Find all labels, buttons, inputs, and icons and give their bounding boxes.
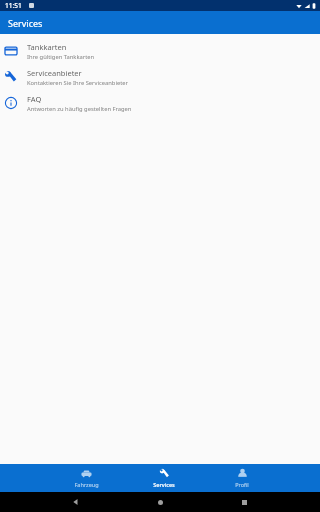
staticText: FAQ: [27, 94, 42, 104]
button[interactable]: Profil: [220, 464, 264, 492]
staticText: Services: [153, 481, 175, 488]
button[interactable]: FAQ: [0, 90, 320, 116]
staticText: Profil: [235, 481, 249, 488]
staticText: Kontaktieren Sie Ihre Serviceanbieter: [27, 79, 128, 87]
button[interactable]: Fahrzeug: [64, 464, 108, 492]
button[interactable]: Home: [152, 494, 168, 510]
staticText: Ihre gültigen Tankkarten: [27, 53, 95, 61]
staticText: Tankkarten: [27, 42, 67, 52]
button[interactable]: Tankkarten: [0, 38, 320, 64]
staticText: Serviceanbieter: [27, 68, 82, 78]
staticText: Fahrzeug: [74, 481, 99, 488]
button[interactable]: Serviceanbieter: [0, 64, 320, 90]
button[interactable]: Services: [142, 464, 186, 492]
staticText: Services: [8, 17, 43, 29]
button[interactable]: Back: [68, 494, 84, 510]
staticText: 11:51: [5, 1, 22, 10]
staticText: Antworten zu häufig gestellten Fragen: [27, 105, 132, 113]
button[interactable]: Recent apps: [236, 494, 252, 510]
